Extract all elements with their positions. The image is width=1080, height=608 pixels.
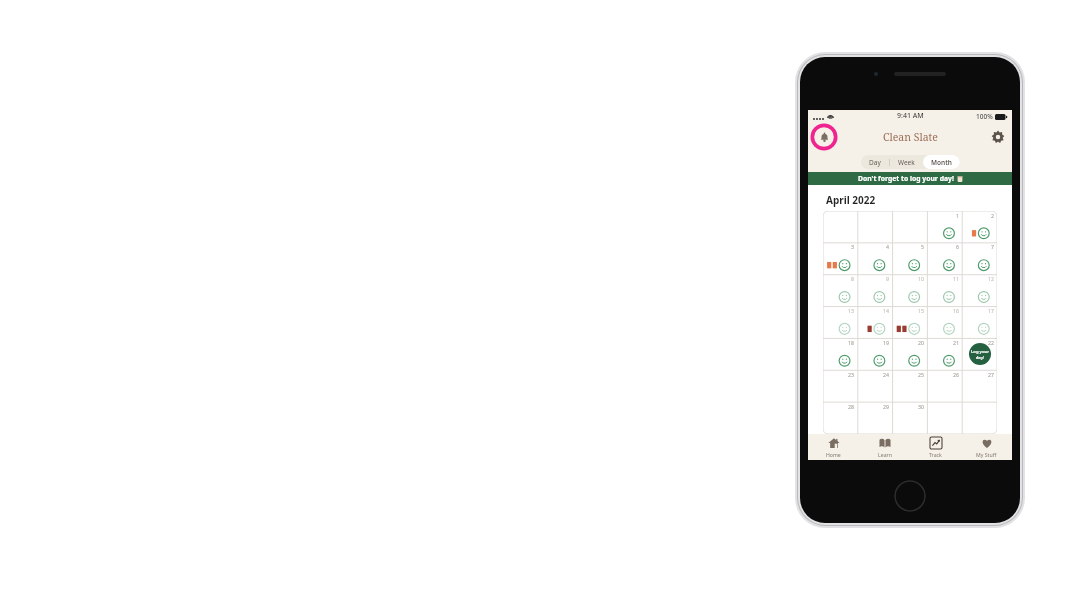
button[interactable]: Track (910, 434, 961, 460)
button[interactable]: My Stuff (961, 434, 1012, 460)
staticText: 6 (956, 243, 959, 250)
staticText: Don't forget to log your day! (858, 174, 954, 183)
button[interactable]: Settings (988, 127, 1008, 147)
staticText: 17 (988, 307, 994, 314)
staticText: My Stuff (976, 451, 997, 458)
staticText: 12 (988, 275, 994, 282)
staticText: 8 (851, 275, 854, 282)
staticText: 23 (848, 371, 854, 378)
staticText: Month (931, 158, 952, 167)
staticText: 1 (956, 212, 959, 219)
staticText: 29 (883, 403, 889, 410)
button[interactable]: Don't forget to log your day! (808, 172, 1012, 185)
staticText: 24 (883, 371, 889, 378)
staticText: 27 (988, 371, 994, 378)
button[interactable]: Month (923, 155, 960, 169)
staticText: 28 (848, 403, 854, 410)
staticText: 9:41 AM (897, 111, 924, 121)
staticText: 7 (991, 243, 994, 250)
button[interactable]: Day (861, 155, 889, 169)
staticText: 26 (953, 371, 959, 378)
staticText: Home (826, 451, 841, 458)
staticText: 10 (918, 275, 924, 282)
button[interactable]: Notifications (810, 123, 838, 151)
staticText: 25 (918, 371, 924, 378)
staticText: 16 (953, 307, 959, 314)
staticText: 5 (921, 243, 924, 250)
staticText: Track (929, 451, 942, 458)
staticText: 30 (918, 403, 924, 410)
staticText: 3 (851, 243, 854, 250)
staticText: 18 (848, 339, 854, 346)
staticText: Week (898, 158, 915, 167)
staticText: 2 (991, 212, 994, 219)
staticText: 14 (883, 307, 889, 314)
button[interactable]: Log your day! (969, 343, 991, 365)
staticText: 4 (886, 243, 889, 250)
staticText: 100% (976, 112, 993, 121)
staticText: 9 (886, 275, 889, 282)
staticText: 21 (953, 339, 959, 346)
button[interactable]: Week (890, 155, 923, 169)
button[interactable]: Learn (859, 434, 910, 460)
staticText: Clean Slate (883, 130, 938, 144)
staticText: Log your day! (971, 349, 989, 360)
staticText: 22 (988, 339, 994, 346)
staticText: Day (869, 158, 881, 167)
staticText: Learn (878, 451, 892, 458)
staticText: April 2022 (826, 193, 876, 207)
staticText: 19 (883, 339, 889, 346)
staticText: 13 (848, 307, 854, 314)
staticText: 11 (953, 275, 959, 282)
staticText: 15 (918, 307, 924, 314)
button[interactable]: Home (808, 434, 859, 460)
staticText: 20 (918, 339, 924, 346)
